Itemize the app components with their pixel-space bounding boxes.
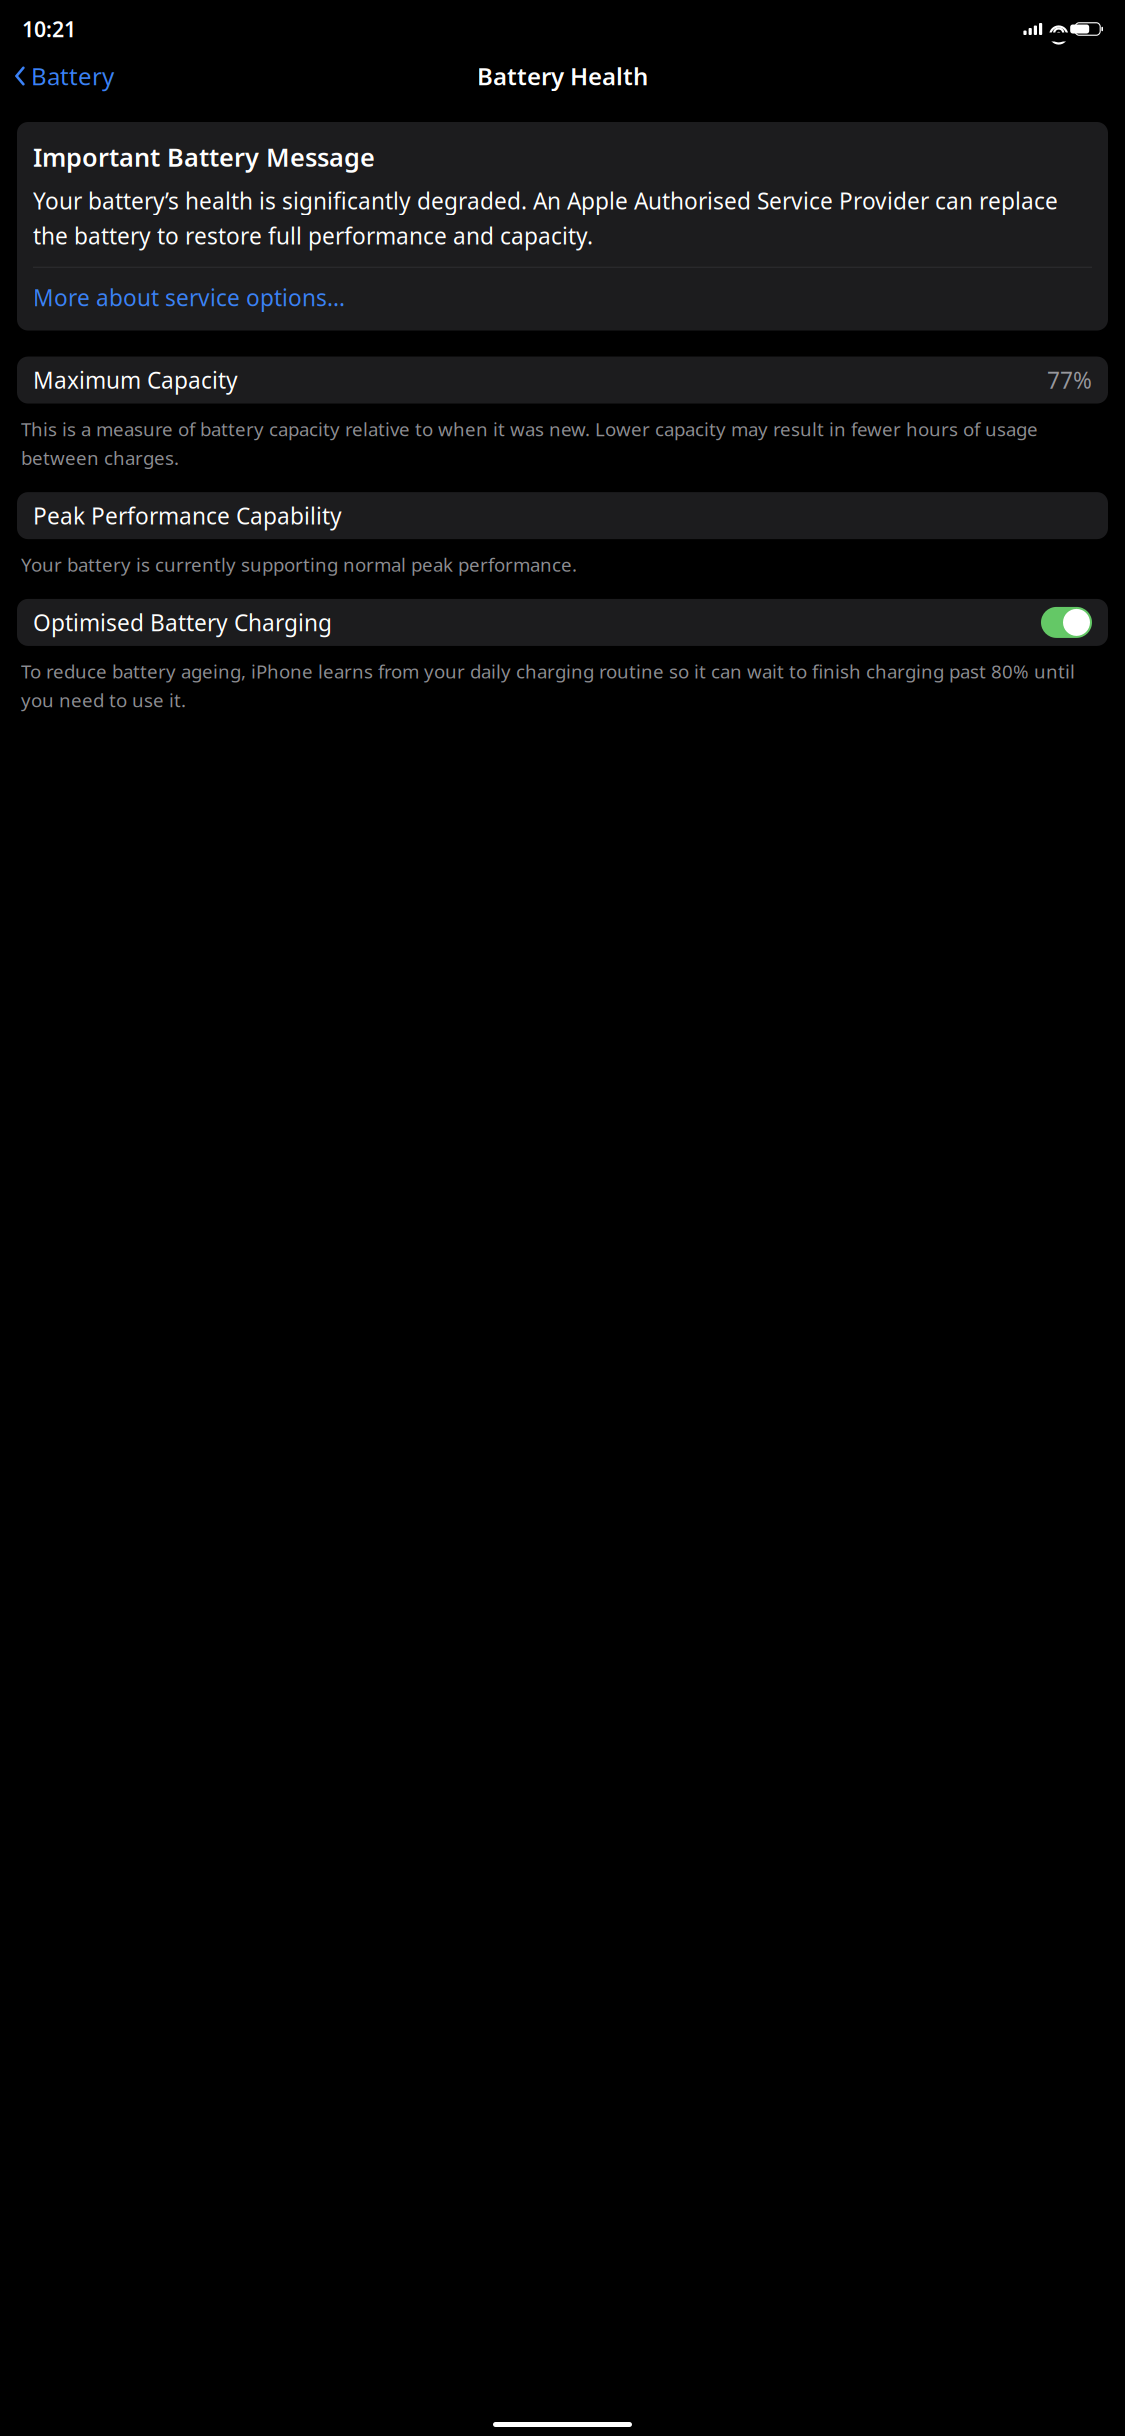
staticText: This is a measure of battery capacity re… — [21, 416, 1038, 470]
button[interactable]: More about service options... — [33, 267, 1092, 327]
button[interactable]: Battery — [14, 52, 122, 100]
staticText: Maximum Capacity — [33, 365, 238, 395]
staticText: 77% — [1047, 365, 1092, 395]
staticText: Battery — [31, 60, 114, 92]
staticText: Your battery’s health is significantly d… — [33, 186, 1058, 251]
staticText: Peak Performance Capability — [33, 501, 342, 531]
staticText: Your battery is currently supporting nor… — [21, 552, 577, 577]
staticText: To reduce battery ageing, iPhone learns … — [21, 659, 1075, 712]
staticText: More about service options... — [33, 282, 345, 312]
staticText: Battery Health — [477, 60, 648, 92]
staticText: 10:21 — [22, 15, 76, 43]
button[interactable]: Optimised Battery Charging — [17, 599, 1108, 646]
staticText: Important Battery Message — [33, 140, 375, 174]
staticText: Optimised Battery Charging — [33, 607, 332, 637]
